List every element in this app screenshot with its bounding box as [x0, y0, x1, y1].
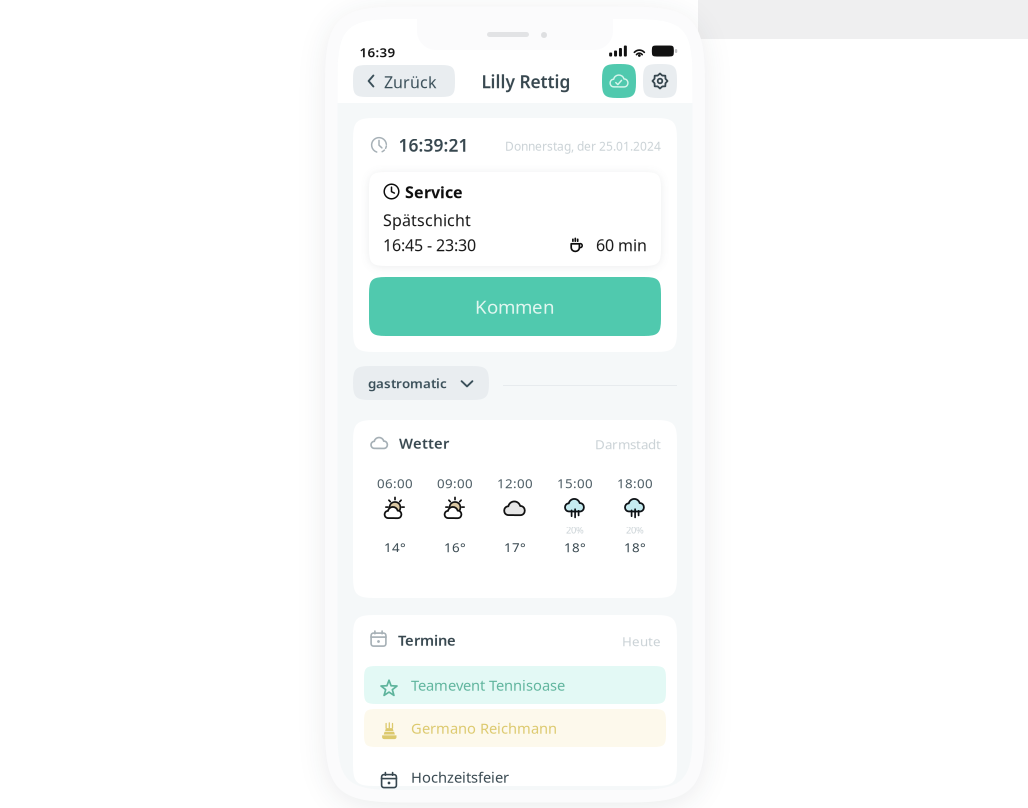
staticText: Service: [405, 181, 463, 203]
staticText: 09:00: [437, 474, 473, 492]
staticText: 17°: [504, 538, 526, 556]
staticText: 16:39:21: [398, 133, 468, 156]
staticText: 20%: [626, 524, 644, 536]
staticText: 16°: [444, 538, 466, 556]
staticText: Termine: [398, 630, 456, 650]
staticText: 18°: [564, 538, 586, 556]
staticText: Wetter: [399, 433, 449, 453]
staticText: Heute: [622, 632, 661, 650]
staticText: Hochzeitsfeier: [411, 767, 509, 787]
staticText: 06:00: [377, 474, 413, 492]
button[interactable]: Settings: [643, 64, 677, 98]
button[interactable]: Zurück: [353, 65, 455, 97]
staticText: 18:00: [617, 474, 653, 492]
staticText: Zurück: [384, 71, 437, 93]
staticText: Darmstadt: [595, 435, 661, 453]
staticText: 18°: [624, 538, 646, 556]
button[interactable]: Hochzeitsfeier: [364, 758, 666, 796]
staticText: gastromatic: [368, 374, 447, 392]
button[interactable]: Germano Reichmann: [364, 709, 666, 747]
staticText: Spätschicht: [383, 209, 471, 231]
staticText: Donnerstag, der 25.01.2024: [505, 138, 661, 154]
staticText: 14°: [384, 538, 406, 556]
button[interactable]: Teamevent Tennisoase: [364, 666, 666, 704]
staticText: Germano Reichmann: [411, 718, 557, 738]
staticText: 20%: [566, 524, 584, 536]
staticText: 12:00: [497, 474, 533, 492]
button[interactable]: gastromatic: [353, 366, 489, 400]
staticText: 60 min: [596, 234, 647, 256]
staticText: Lilly Rettig: [481, 70, 570, 93]
staticText: 16:39: [359, 43, 395, 61]
staticText: Kommen: [475, 294, 555, 319]
button[interactable]: Sync: [602, 64, 636, 98]
button[interactable]: Kommen: [369, 277, 661, 336]
staticText: 16:45 - 23:30: [383, 234, 476, 256]
staticText: 15:00: [557, 474, 593, 492]
staticText: Teamevent Tennisoase: [411, 675, 565, 695]
